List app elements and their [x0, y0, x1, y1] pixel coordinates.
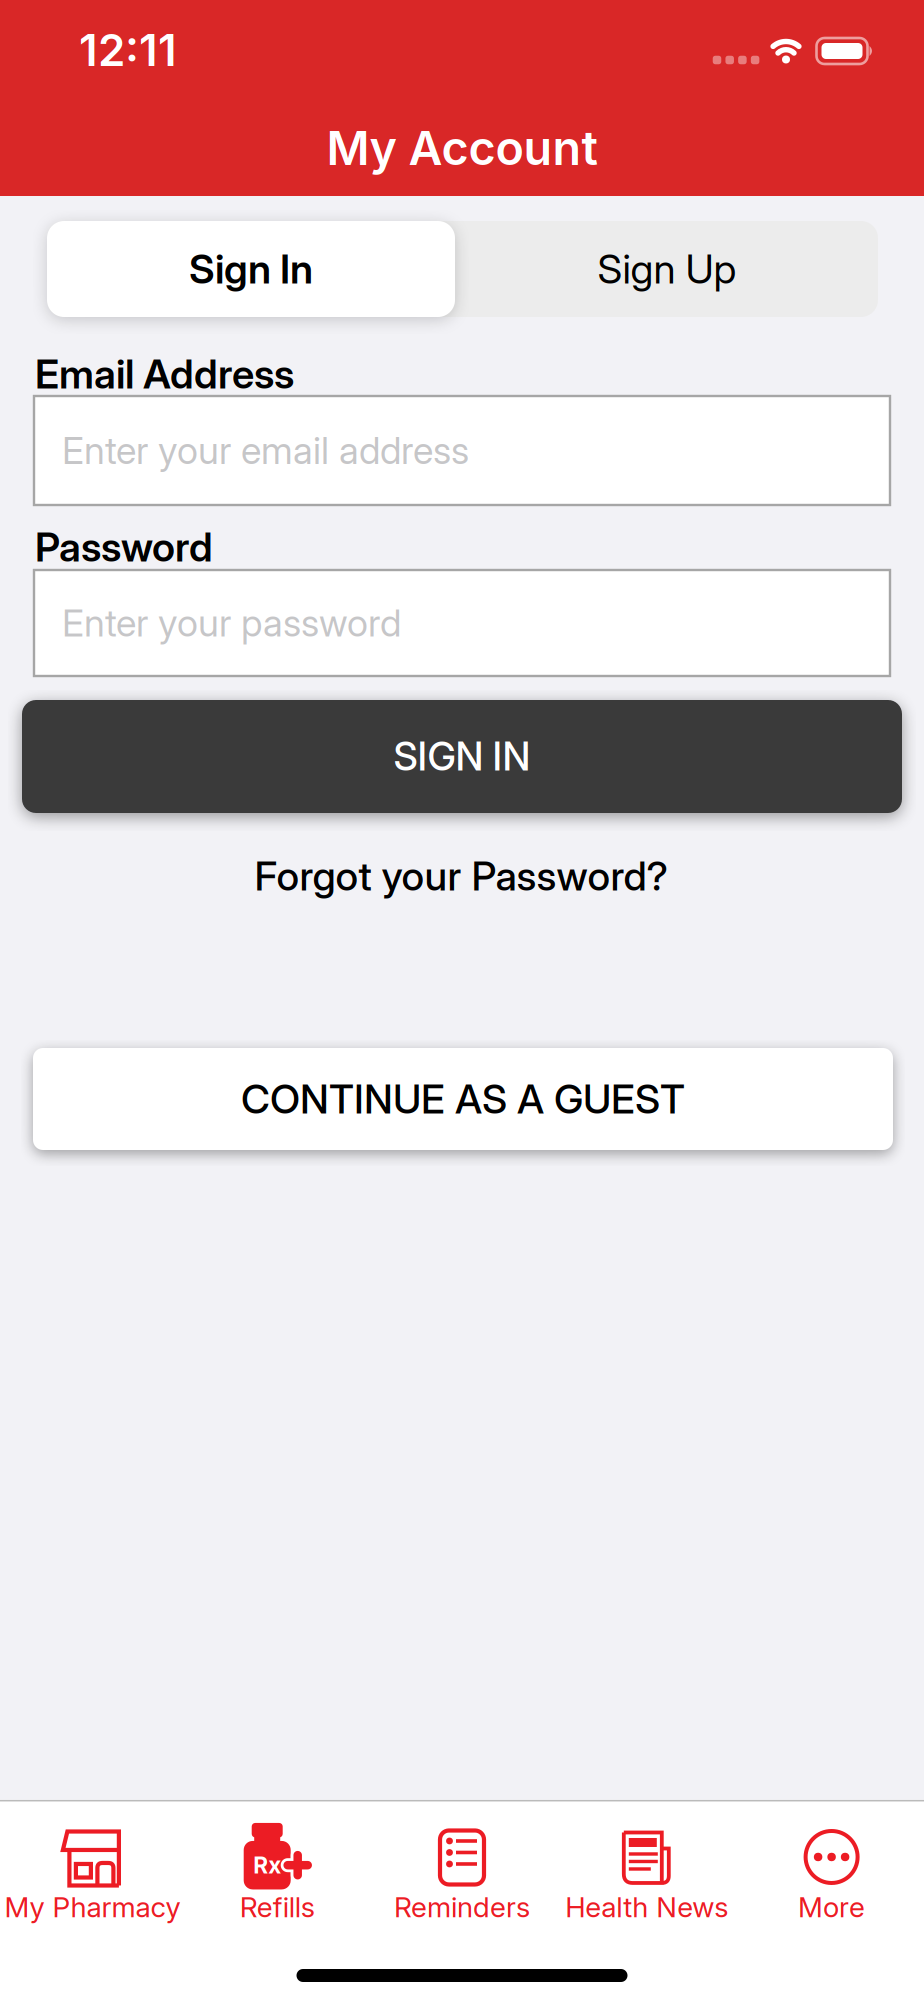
staticText: Health News	[565, 1890, 728, 1923]
staticText: Refills	[240, 1890, 315, 1923]
staticText: My Pharmacy	[4, 1890, 180, 1923]
button[interactable]: Health News	[554, 1826, 739, 1922]
staticText: Sign Up	[597, 245, 736, 293]
staticText: Enter your password	[62, 601, 401, 645]
button[interactable]: Reminders	[370, 1826, 554, 1922]
button[interactable]: More	[739, 1826, 924, 1922]
staticText: My Account	[326, 120, 597, 176]
button[interactable]: CONTINUE AS A GUEST	[33, 1048, 893, 1150]
staticText: Rx	[253, 1852, 281, 1878]
staticText: SIGN IN	[393, 734, 530, 779]
staticText: 12:11	[79, 24, 177, 76]
button[interactable]: Forgot your Password?	[254, 852, 667, 900]
button[interactable]: Sign In	[47, 221, 455, 317]
staticText: Email Address	[35, 350, 294, 398]
button[interactable]: Sign Up	[457, 221, 877, 317]
button[interactable]: My Pharmacy	[0, 1826, 185, 1922]
staticText: More	[798, 1890, 865, 1923]
textField[interactable]: Enter your password	[34, 610, 890, 636]
staticText: Enter your email address	[34, 437, 295, 464]
staticText: Password	[35, 523, 213, 571]
staticText: Enter your password	[34, 610, 251, 636]
button[interactable]: Rx	[185, 1826, 370, 1922]
staticText: CONTINUE AS A GUEST	[241, 1075, 685, 1123]
textField[interactable]: Enter your email address	[34, 437, 890, 464]
staticText: Forgot your Password?	[254, 852, 667, 900]
staticText: Enter your email address	[62, 428, 469, 472]
button[interactable]: SIGN IN	[22, 700, 902, 813]
staticText: Reminders	[394, 1890, 530, 1923]
staticText: Sign In	[189, 245, 313, 293]
